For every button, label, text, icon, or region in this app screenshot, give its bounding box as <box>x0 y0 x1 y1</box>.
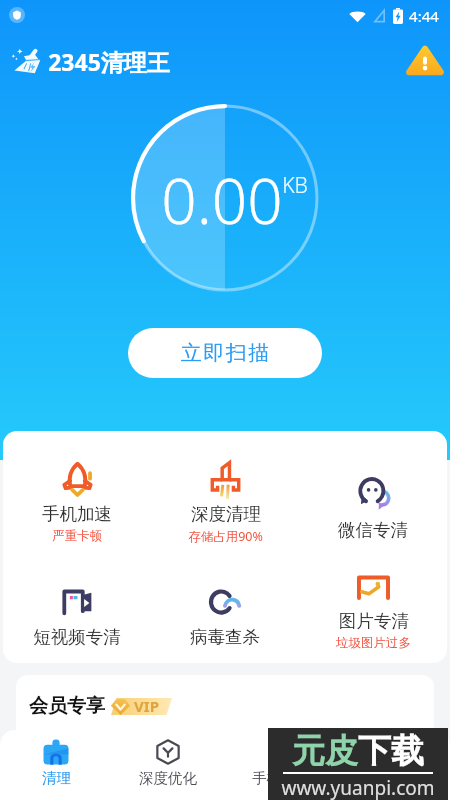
staticText: 下载 <box>358 730 424 772</box>
staticText: 病毒查杀 <box>190 626 260 648</box>
button[interactable]: 深度清理 <box>151 446 299 559</box>
staticText: 立即扫描 <box>180 340 270 366</box>
staticText: 深度清理 <box>191 503 261 525</box>
staticText: 2345清理王 <box>48 46 170 77</box>
staticText: www.yuanpi.com <box>281 775 435 800</box>
button[interactable]: 我的 <box>337 730 450 800</box>
button[interactable]: 清理 <box>0 730 112 800</box>
staticText: 手机管家 <box>252 769 310 787</box>
staticText: KB <box>282 171 308 200</box>
button[interactable]: 手机管家 <box>224 730 337 800</box>
staticText: 元皮 <box>292 730 358 772</box>
button[interactable]: 会员专享 <box>16 675 434 742</box>
staticText: 严重卡顿 <box>52 528 102 544</box>
button[interactable]: 病毒查杀 <box>151 553 299 663</box>
staticText: 深度优化 <box>139 769 197 787</box>
button[interactable]: 微信专清 <box>299 446 447 559</box>
staticText: 4:44 <box>409 6 439 26</box>
staticText: 我的 <box>379 769 408 787</box>
staticText: 存储占用90% <box>188 528 263 545</box>
button[interactable]: 深度优化 <box>112 730 224 800</box>
button[interactable]: 手机加速 <box>3 446 151 559</box>
staticText: 图片专清 <box>339 610 409 632</box>
staticText: 微信专清 <box>338 519 408 541</box>
staticText: 短视频专清 <box>33 626 121 648</box>
staticText: 垃圾图片过多 <box>336 635 411 651</box>
staticText: 0.00 <box>161 158 283 242</box>
button[interactable]: 图片专清 <box>299 553 447 663</box>
staticText: 清理 <box>42 769 71 787</box>
button[interactable]: 立即扫描 <box>128 328 322 378</box>
staticText: 会员专享 <box>29 694 105 718</box>
button[interactable]: 2345清理王 <box>11 44 170 78</box>
staticText: 手机加速 <box>42 503 112 525</box>
staticText: VIP <box>134 696 159 716</box>
button[interactable]: 短视频专清 <box>3 553 151 663</box>
button[interactable]: Warning <box>405 44 445 78</box>
